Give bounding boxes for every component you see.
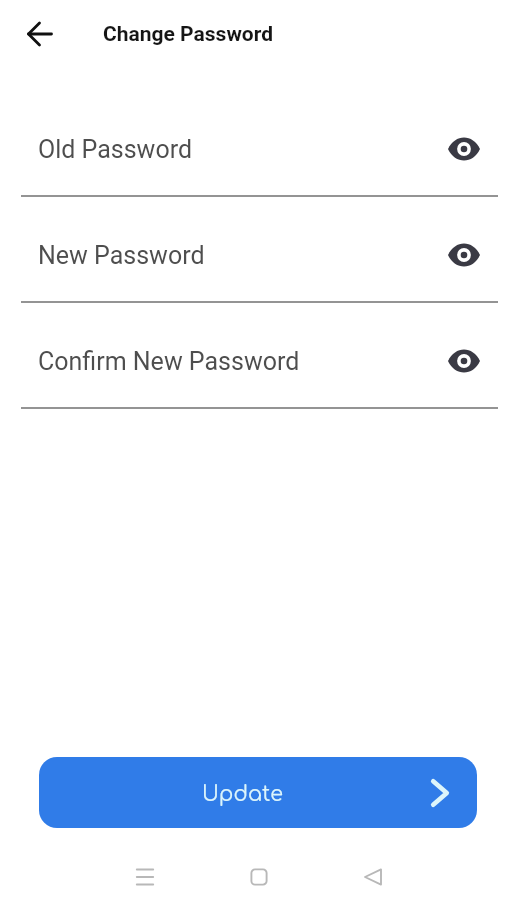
button[interactable]: Update bbox=[39, 757, 477, 828]
staticText: Change Password bbox=[103, 22, 274, 47]
staticText: Update bbox=[202, 783, 283, 806]
button[interactable]: Recent apps bbox=[123, 855, 167, 899]
button[interactable]: New Password bbox=[0, 221, 507, 289]
button[interactable]: Navigate back bbox=[20, 14, 60, 54]
button[interactable]: Back bbox=[351, 855, 395, 899]
staticText: Old Password bbox=[38, 135, 193, 164]
staticText: New Password bbox=[38, 241, 205, 270]
button[interactable]: Confirm New Password bbox=[0, 327, 507, 395]
button[interactable]: Show Old Password bbox=[442, 127, 486, 171]
button[interactable]: Show New Password bbox=[442, 233, 486, 277]
button[interactable]: Old Password bbox=[0, 115, 507, 183]
button[interactable]: Show Confirm New Password bbox=[442, 339, 486, 383]
button[interactable]: Home bbox=[237, 855, 281, 899]
staticText: Confirm New Password bbox=[38, 347, 300, 376]
